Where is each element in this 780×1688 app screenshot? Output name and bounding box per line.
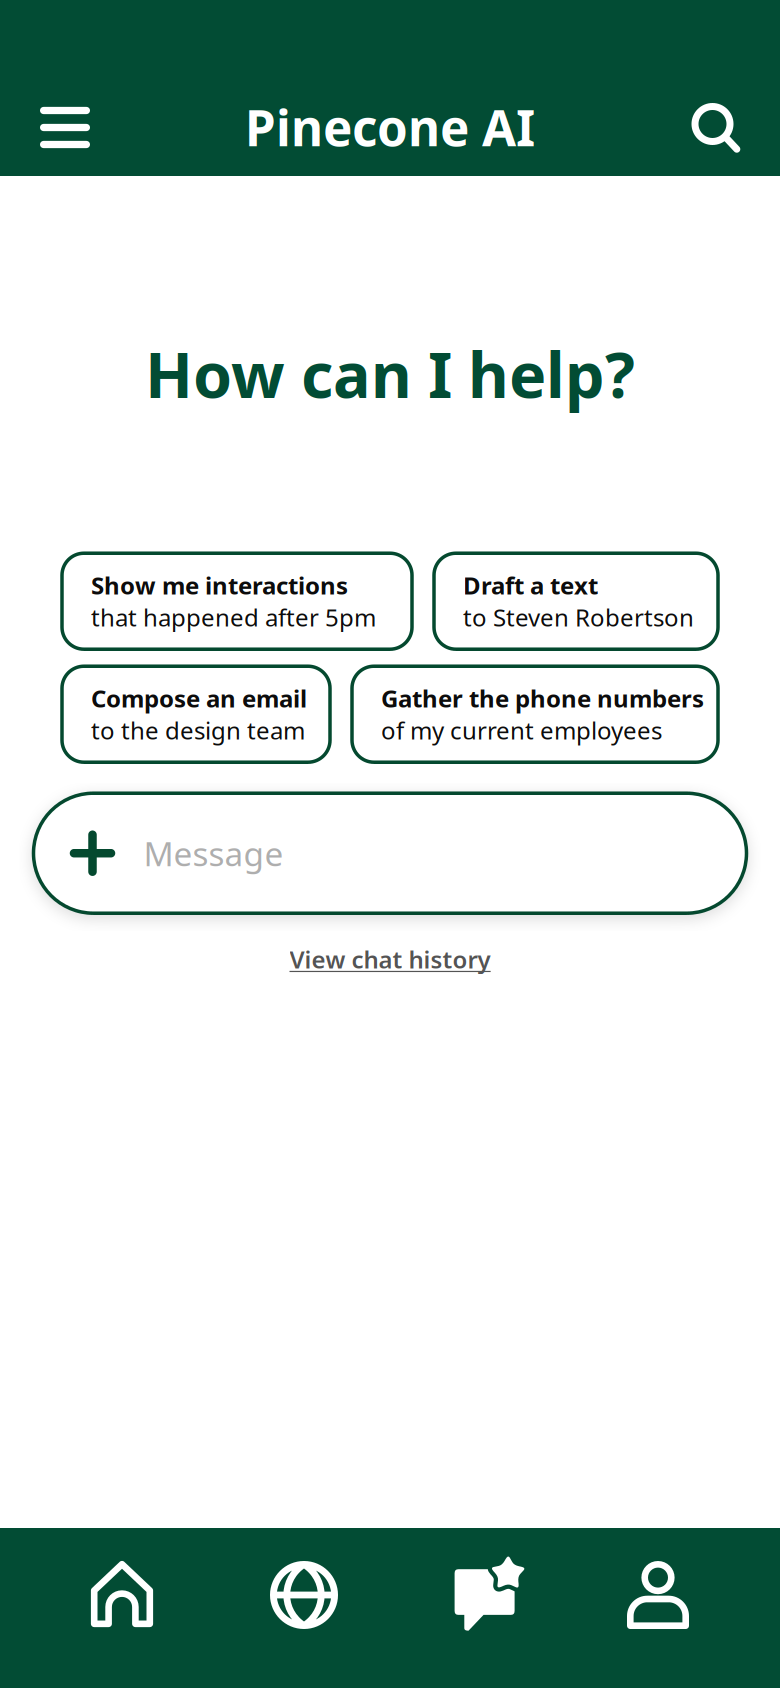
staticText: Message [143,831,283,875]
button[interactable]: Menu [27,86,103,166]
button[interactable]: Draft a text [434,553,718,649]
staticText: to Steven Robertson [463,601,694,633]
button[interactable]: Search [677,86,753,166]
staticText: Pinecone AI [245,94,535,160]
staticText: Compose an email [91,682,307,714]
button[interactable]: Profile [577,1528,759,1688]
button[interactable]: Explore [213,1528,395,1688]
staticText: Draft a text [463,569,598,601]
button[interactable]: Home [31,1528,213,1688]
staticText: to the design team [91,714,305,746]
staticText: of my current employees [381,714,662,746]
staticText: that happened after 5pm [91,601,376,633]
button[interactable]: Show me interactions [62,553,412,649]
button[interactable]: Gather the phone numbers [352,666,718,762]
staticText: View chat history [289,943,490,975]
button[interactable]: View chat history [289,943,490,975]
button[interactable]: Chats [395,1528,577,1688]
staticText: Gather the phone numbers [381,682,704,714]
button[interactable]: Message [33,793,746,913]
button[interactable]: Compose an email [62,666,330,762]
staticText: How can I help? [145,332,635,415]
staticText: Show me interactions [91,569,348,601]
